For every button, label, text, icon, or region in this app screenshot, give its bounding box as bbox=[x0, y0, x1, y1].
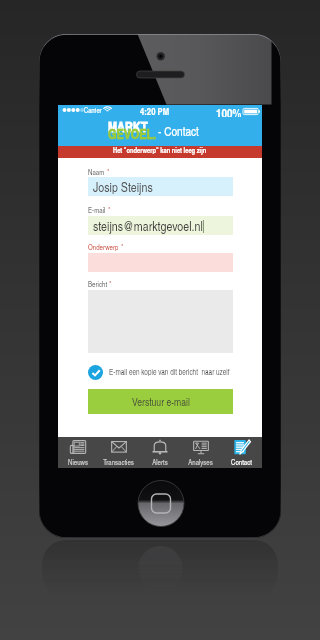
staticText: Onderwerp bbox=[88, 242, 121, 252]
staticText: Het "onderwerp" kan niet leeg zijn bbox=[113, 145, 207, 155]
button[interactable]: Transacties bbox=[98, 437, 139, 468]
staticText: * bbox=[108, 205, 111, 215]
staticText: Transacties bbox=[103, 457, 134, 467]
staticText: steijns@marktgevoel.nl bbox=[93, 217, 203, 235]
staticText: * bbox=[121, 242, 124, 252]
button[interactable]: Nieuws bbox=[58, 437, 98, 468]
button[interactable]: Verstuur e-mail bbox=[88, 389, 233, 414]
staticText: E-mail een kopie van dit bericht naar uz… bbox=[109, 367, 230, 378]
staticText: Nieuws bbox=[68, 457, 88, 467]
staticText: Josip Steijns bbox=[93, 178, 153, 196]
staticText: Naam bbox=[88, 167, 107, 177]
staticText: Verstuur e-mail bbox=[132, 395, 190, 409]
button[interactable]: E-mail een kopie naar uzelf bbox=[88, 365, 103, 380]
staticText: Bericht bbox=[88, 279, 109, 289]
staticText: - Contact bbox=[158, 123, 199, 140]
staticText: * bbox=[109, 279, 112, 289]
staticText: Alerts bbox=[152, 457, 168, 467]
staticText: Analyses bbox=[188, 457, 213, 467]
staticText: 100% bbox=[216, 105, 242, 117]
staticText: GEVOEL. bbox=[108, 124, 157, 143]
button[interactable]: Josip Steijns bbox=[88, 177, 233, 196]
staticText: E-mail bbox=[88, 205, 108, 215]
button[interactable]: Analyses bbox=[180, 437, 221, 468]
staticText: Carrier bbox=[84, 105, 102, 115]
staticText: * bbox=[107, 167, 110, 177]
button[interactable]: Contact bbox=[221, 437, 262, 468]
staticText: Contact bbox=[231, 457, 252, 467]
button[interactable]: steijns@marktgevoel.nl bbox=[88, 216, 233, 235]
button[interactable]: Alerts bbox=[139, 437, 180, 468]
staticText: 4:20 PM bbox=[140, 105, 170, 117]
staticText: MARKT bbox=[108, 117, 148, 136]
